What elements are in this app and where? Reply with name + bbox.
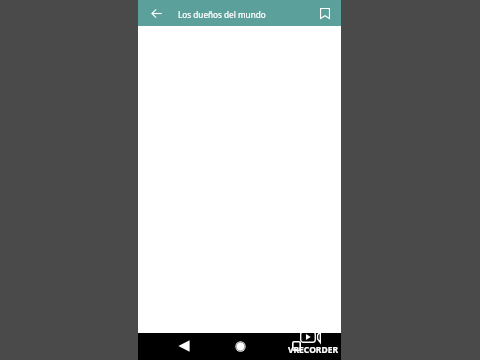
staticText: Los dueños del mundo <box>178 9 266 20</box>
staticText: VRECORDER <box>288 344 339 356</box>
button[interactable]: Back <box>174 336 194 356</box>
button[interactable]: Home <box>230 336 250 356</box>
button[interactable]: Recent apps <box>286 336 306 356</box>
button[interactable]: Add to library <box>315 3 335 23</box>
button[interactable]: Navigate up <box>146 3 166 23</box>
